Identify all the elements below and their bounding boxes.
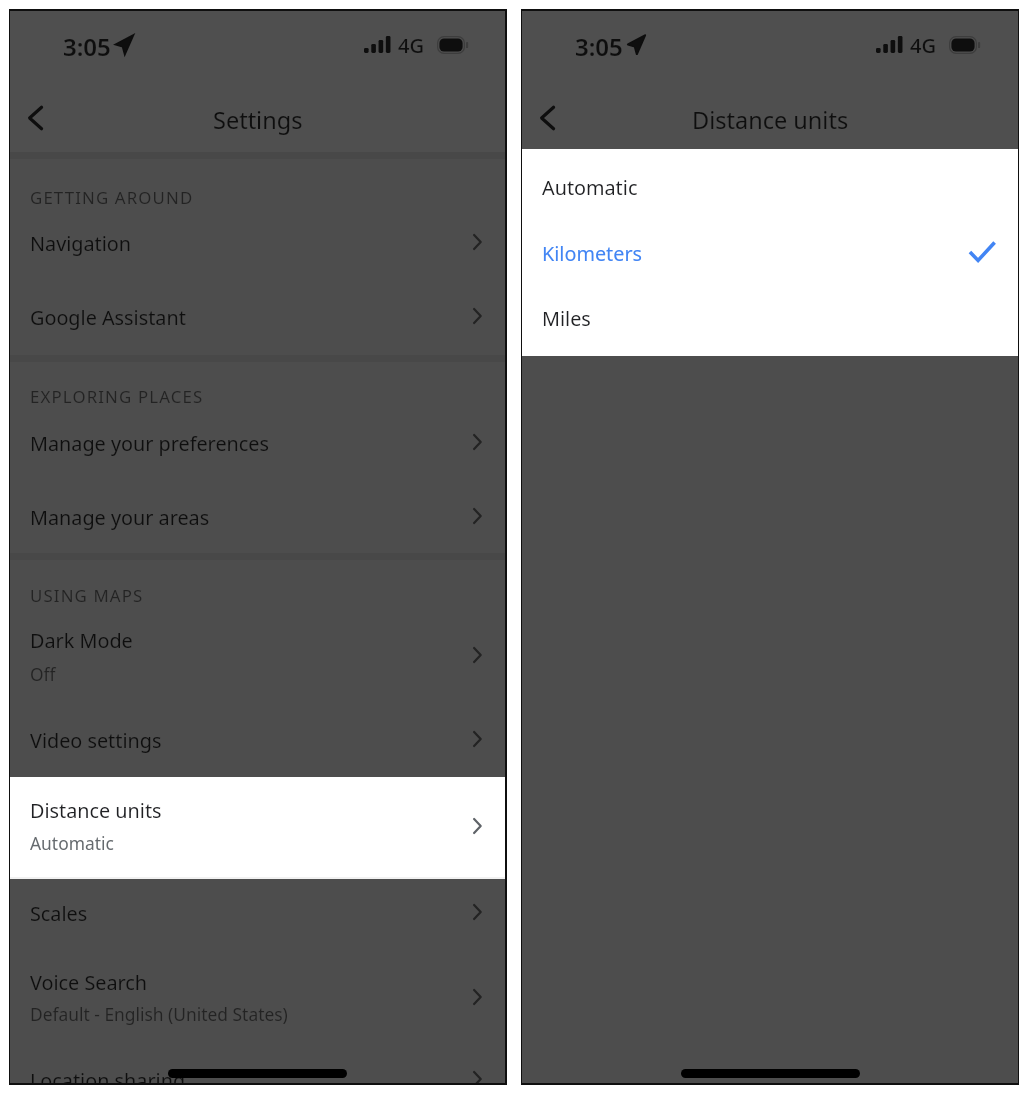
- staticText: Off: [30, 662, 56, 686]
- button[interactable]: Kilometers: [522, 217, 1018, 283]
- staticText: Automatic: [30, 831, 114, 855]
- button[interactable]: Video settings: [10, 706, 505, 771]
- button[interactable]: Google Assistant: [10, 279, 505, 352]
- staticText: Video settings: [30, 727, 162, 754]
- button[interactable]: Automatic: [522, 149, 1018, 217]
- staticText: 3:05: [575, 30, 623, 63]
- button[interactable]: Navigation: [10, 216, 505, 279]
- staticText: Manage your areas: [30, 504, 210, 531]
- button[interactable]: Manage your areas: [10, 479, 505, 552]
- staticText: Distance units: [692, 104, 849, 136]
- staticText: GETTING AROUND: [30, 186, 194, 209]
- staticText: EXPLORING PLACES: [30, 385, 204, 408]
- button[interactable]: Back: [525, 88, 583, 148]
- staticText: Distance units: [30, 797, 162, 824]
- staticText: Voice Search: [30, 969, 148, 996]
- staticText: Miles: [542, 305, 591, 332]
- button[interactable]: Location sharing: [10, 1047, 505, 1083]
- staticText: Dark Mode: [30, 627, 133, 654]
- button[interactable]: Manage your preferences: [10, 416, 505, 479]
- staticText: Automatic: [542, 174, 638, 201]
- staticText: Google Assistant: [30, 304, 186, 331]
- button[interactable]: Back: [13, 88, 71, 148]
- staticText: Scales: [30, 900, 88, 927]
- staticText: Location sharing: [30, 1067, 186, 1083]
- button[interactable]: Miles: [522, 283, 1018, 356]
- button[interactable]: Scales: [10, 879, 505, 946]
- button[interactable]: Voice Search: [10, 946, 505, 1047]
- button[interactable]: Distance units: [10, 777, 505, 879]
- staticText: 4G: [398, 32, 424, 59]
- staticText: Navigation: [30, 230, 132, 257]
- staticText: 4G: [910, 32, 936, 59]
- staticText: USING MAPS: [30, 584, 144, 607]
- staticText: Manage your preferences: [30, 430, 269, 457]
- button[interactable]: Dark Mode: [10, 615, 505, 706]
- staticText: Settings: [213, 104, 303, 136]
- staticText: Default - English (United States): [30, 1002, 288, 1026]
- staticText: Kilometers: [542, 240, 643, 267]
- staticText: 3:05: [63, 30, 111, 63]
